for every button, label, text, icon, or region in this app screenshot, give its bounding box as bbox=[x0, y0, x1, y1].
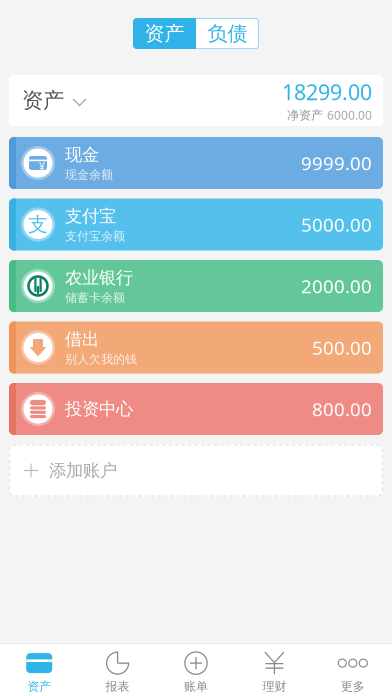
button[interactable]: 账单 bbox=[157, 644, 235, 696]
button[interactable]: 负债 bbox=[196, 18, 259, 49]
button[interactable]: 添加账户 bbox=[9, 444, 383, 496]
staticText: 理财 bbox=[262, 679, 286, 694]
button[interactable]: 资产 bbox=[133, 18, 196, 49]
staticText: 添加账户 bbox=[49, 460, 117, 481]
button[interactable]: 资产 bbox=[0, 644, 78, 696]
staticText: 报表 bbox=[106, 679, 130, 694]
staticText: 5000.00 bbox=[301, 212, 372, 237]
staticText: 现金 bbox=[65, 144, 99, 165]
staticText: 资产 bbox=[144, 21, 184, 46]
staticText: 账单 bbox=[184, 679, 208, 694]
button[interactable]: 资产 bbox=[9, 75, 383, 126]
staticText: 800.00 bbox=[312, 397, 372, 421]
staticText: 6000.00 bbox=[327, 107, 372, 123]
staticText: 18299.00 bbox=[282, 78, 372, 106]
staticText: 2000.00 bbox=[301, 274, 372, 298]
button[interactable]: 报表 bbox=[78, 644, 157, 696]
staticText: 更多 bbox=[341, 679, 365, 694]
staticText: 资产 bbox=[22, 87, 64, 114]
staticText: 储蓄卡余额 bbox=[65, 290, 125, 305]
staticText: 支付宝 bbox=[65, 205, 116, 227]
staticText: 资产 bbox=[27, 679, 51, 694]
staticText: ¥ bbox=[39, 159, 45, 173]
staticText: 9999.00 bbox=[301, 151, 372, 175]
staticText: 净资产 bbox=[287, 108, 323, 122]
staticText: 支付宝余额 bbox=[65, 229, 125, 243]
button[interactable]: 借出 bbox=[9, 321, 383, 373]
button[interactable]: 更多 bbox=[314, 644, 392, 696]
staticText: 借出 bbox=[65, 328, 99, 350]
button[interactable]: 投资中心 bbox=[9, 383, 383, 435]
staticText: 支 bbox=[28, 212, 48, 237]
staticText: 投资中心 bbox=[65, 398, 133, 420]
button[interactable]: 农业银行 bbox=[9, 260, 383, 312]
staticText: 现金余额 bbox=[65, 167, 113, 182]
staticText: 别人欠我的钱 bbox=[65, 352, 137, 366]
staticText: 农业银行 bbox=[65, 267, 133, 288]
button[interactable]: 理财 bbox=[235, 644, 314, 696]
button[interactable]: 支 bbox=[9, 198, 383, 250]
button[interactable]: ¥ bbox=[9, 137, 383, 189]
staticText: 500.00 bbox=[312, 335, 372, 360]
staticText: 负债 bbox=[207, 21, 247, 46]
